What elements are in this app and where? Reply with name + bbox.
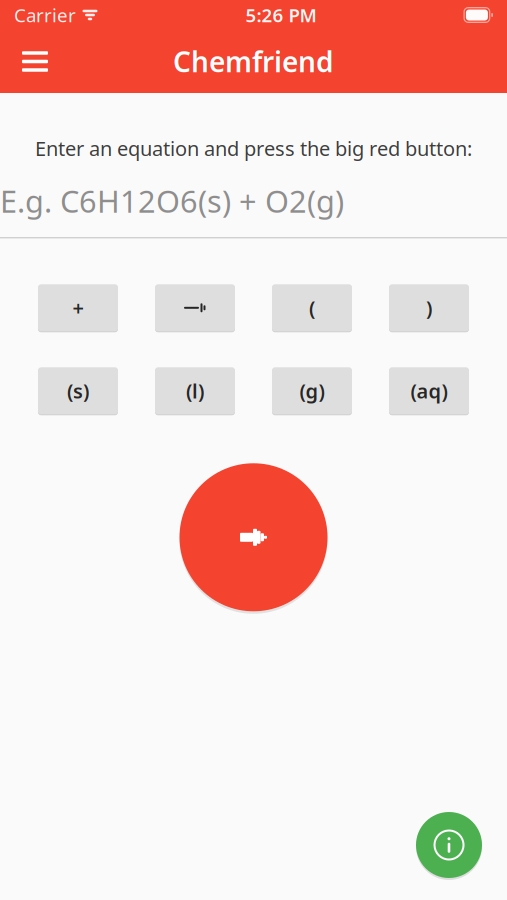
button[interactable]: Menu bbox=[12, 38, 58, 84]
staticText: ( bbox=[309, 294, 315, 321]
button[interactable]: (s) bbox=[38, 366, 118, 415]
staticText: (s) bbox=[67, 377, 89, 404]
button[interactable]: (l) bbox=[155, 366, 235, 415]
staticText: (l) bbox=[186, 377, 204, 404]
staticText: (aq) bbox=[410, 377, 447, 404]
button[interactable]: + bbox=[38, 283, 118, 332]
staticText: + bbox=[72, 294, 83, 321]
button[interactable]: Yields arrow bbox=[155, 283, 235, 332]
button[interactable]: Balance equation bbox=[173, 459, 333, 615]
staticText: (g) bbox=[299, 377, 324, 404]
staticText: E.g. C6H12O6(s) + O2(g) bbox=[0, 181, 344, 221]
staticText: 5:26 PM bbox=[246, 3, 317, 27]
staticText: Carrier bbox=[14, 3, 76, 27]
button[interactable]: Information bbox=[413, 809, 485, 881]
staticText: Chemfriend bbox=[173, 43, 334, 80]
button[interactable]: ( bbox=[272, 283, 352, 332]
button[interactable]: (aq) bbox=[389, 366, 469, 415]
staticText: ) bbox=[426, 294, 432, 321]
button[interactable]: ) bbox=[389, 283, 469, 332]
button[interactable]: (g) bbox=[272, 366, 352, 415]
staticText: Enter an equation and press the big red … bbox=[35, 135, 472, 162]
